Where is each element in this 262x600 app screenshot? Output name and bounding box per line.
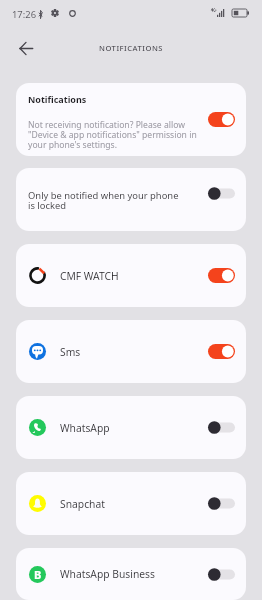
staticText: WhatsApp bbox=[60, 421, 208, 435]
staticText: NOTIFICATIONS bbox=[99, 43, 164, 53]
button[interactable]: B bbox=[16, 548, 246, 600]
button[interactable]: WhatsApp bbox=[16, 396, 246, 459]
button[interactable]: Back bbox=[11, 33, 41, 63]
staticText: 17:26 bbox=[12, 8, 37, 21]
button[interactable]: Switch off bbox=[208, 186, 235, 201]
button[interactable]: Snapchat bbox=[16, 472, 246, 535]
button[interactable]: Switch off bbox=[208, 496, 235, 511]
staticText: Not receiving notification? Please allow… bbox=[28, 119, 216, 150]
staticText: Only be notified when your phone is lock… bbox=[28, 189, 186, 211]
button[interactable]: Switch off bbox=[208, 420, 235, 435]
staticText: CMF WATCH bbox=[60, 269, 208, 283]
button[interactable]: Switch on bbox=[208, 268, 235, 283]
staticText: WhatsApp Business bbox=[60, 567, 208, 581]
button[interactable]: Switch on bbox=[208, 344, 235, 359]
staticText: Notifications bbox=[28, 93, 87, 105]
button[interactable]: CMF WATCH bbox=[16, 244, 246, 307]
button[interactable]: Sms bbox=[16, 320, 246, 383]
button[interactable]: Switch off bbox=[208, 567, 235, 582]
staticText: Sms bbox=[60, 345, 208, 359]
staticText: Snapchat bbox=[60, 497, 208, 511]
staticText: B bbox=[34, 567, 42, 582]
button[interactable]: Switch on bbox=[208, 112, 235, 127]
